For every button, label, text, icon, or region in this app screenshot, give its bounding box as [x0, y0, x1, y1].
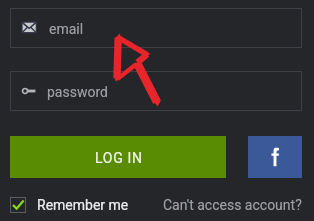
button[interactable]: Remember me	[10, 196, 129, 214]
button[interactable]: email	[10, 8, 302, 48]
button[interactable]: Log in with Facebook	[248, 136, 302, 178]
button[interactable]: password	[10, 71, 302, 111]
staticText: Can't access account?	[163, 197, 302, 213]
button[interactable]: LOG IN	[10, 136, 226, 178]
staticText: password	[47, 84, 108, 100]
staticText: Remember me	[37, 197, 129, 213]
button[interactable]: Can't access account?	[163, 196, 302, 214]
staticText: email	[49, 21, 84, 37]
staticText: LOG IN	[95, 150, 143, 166]
